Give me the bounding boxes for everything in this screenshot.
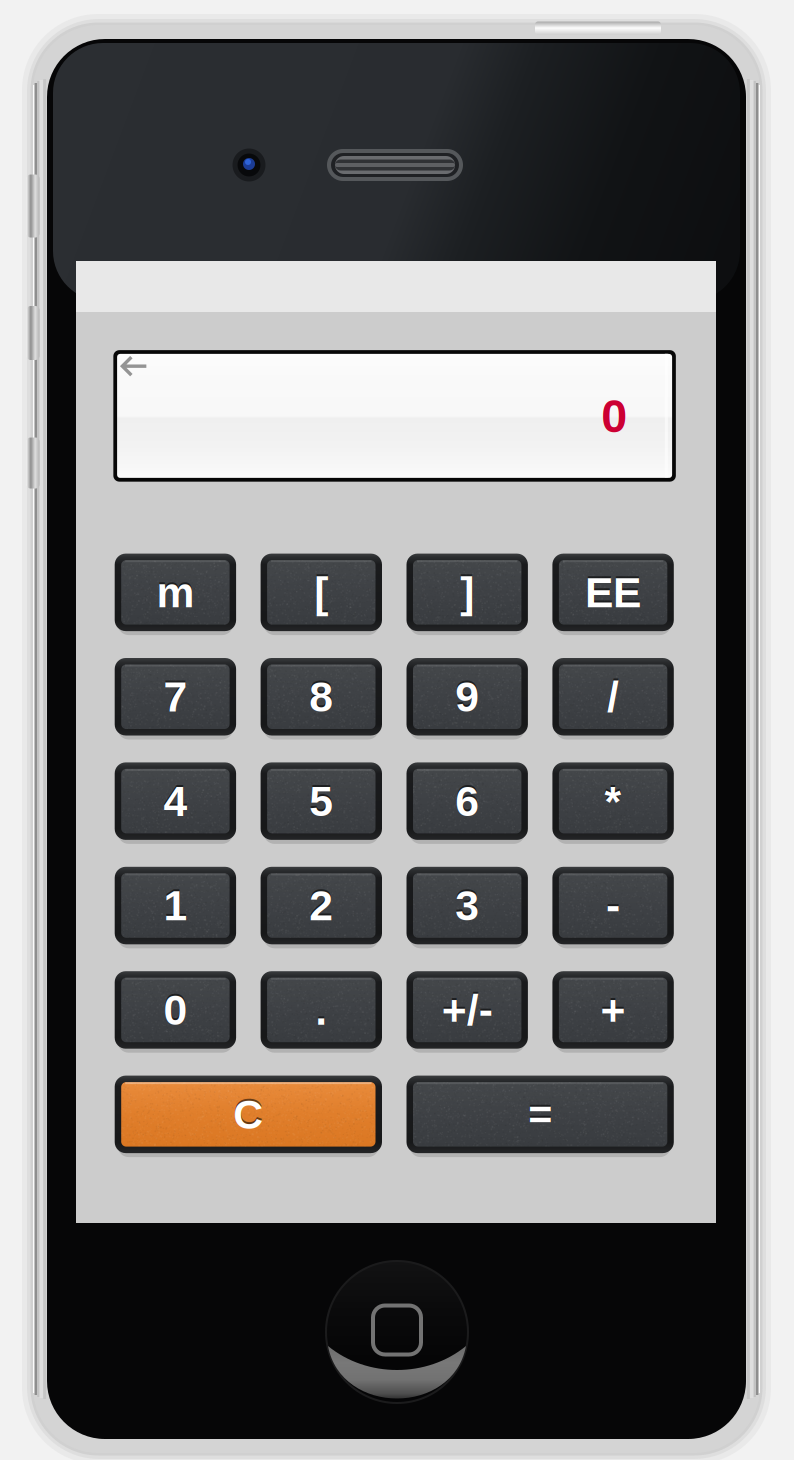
staticText: [ xyxy=(314,568,328,616)
button[interactable]: ] xyxy=(406,554,528,631)
staticText: 9 xyxy=(455,671,479,719)
staticText: EE xyxy=(585,568,641,616)
staticText: m xyxy=(156,568,194,616)
button[interactable]: 0 xyxy=(115,971,236,1049)
staticText: 0 xyxy=(163,986,187,1034)
button[interactable]: C xyxy=(115,1076,382,1153)
staticText: 0 xyxy=(163,984,187,1032)
button[interactable]: EE xyxy=(552,554,674,631)
staticText: 7 xyxy=(163,673,187,721)
staticText: ] xyxy=(460,566,474,614)
staticText: m xyxy=(156,566,194,614)
button[interactable]: 5 xyxy=(261,762,382,840)
button[interactable]: = xyxy=(406,1076,674,1153)
button[interactable]: + xyxy=(552,971,674,1049)
staticText: - xyxy=(606,882,620,929)
staticText: 1 xyxy=(163,882,187,929)
button[interactable]: 3 xyxy=(406,867,528,944)
staticText: = xyxy=(528,1091,552,1137)
button[interactable]: 6 xyxy=(406,762,528,840)
button[interactable]: 9 xyxy=(406,658,528,735)
staticText: 6 xyxy=(455,777,479,825)
staticText: . xyxy=(315,986,327,1034)
staticText: 2 xyxy=(309,880,333,927)
staticText: 5 xyxy=(309,775,333,823)
staticText: 9 xyxy=(455,673,479,721)
staticText: +/- xyxy=(442,984,493,1032)
button[interactable]: 8 xyxy=(261,658,382,735)
button[interactable]: +/- xyxy=(406,971,528,1049)
button[interactable]: 2 xyxy=(261,867,382,944)
staticText: 5 xyxy=(309,777,333,825)
staticText: 7 xyxy=(163,671,187,719)
staticText: / xyxy=(607,673,619,721)
staticText: 2 xyxy=(309,882,333,929)
staticText: C xyxy=(233,1089,263,1135)
staticText: . xyxy=(315,984,327,1032)
staticText: 1 xyxy=(163,880,187,927)
staticText: EE xyxy=(585,566,641,614)
staticText: + xyxy=(601,984,626,1032)
button[interactable]: 1 xyxy=(115,867,236,944)
button[interactable]: 7 xyxy=(115,658,236,735)
staticText: - xyxy=(606,880,620,927)
button[interactable]: . xyxy=(261,971,382,1049)
button[interactable]: 4 xyxy=(115,762,236,840)
staticText: * xyxy=(605,775,622,823)
button[interactable]: * xyxy=(552,762,674,840)
staticText: 8 xyxy=(309,671,333,719)
staticText: C xyxy=(233,1091,263,1137)
button[interactable]: - xyxy=(552,867,674,944)
staticText: 4 xyxy=(163,777,187,825)
staticText: 0 xyxy=(601,390,627,442)
staticText: 8 xyxy=(309,673,333,721)
staticText: 3 xyxy=(455,882,479,929)
staticText: 6 xyxy=(455,775,479,823)
staticText: + xyxy=(601,986,626,1034)
button[interactable]: / xyxy=(552,658,674,735)
staticText: ] xyxy=(460,568,474,616)
staticText: * xyxy=(605,777,622,825)
button[interactable]: [ xyxy=(261,554,382,631)
button[interactable]: m xyxy=(115,554,236,631)
staticText: [ xyxy=(314,566,328,614)
staticText: 4 xyxy=(163,775,187,823)
staticText: +/- xyxy=(442,986,493,1034)
staticText: 3 xyxy=(455,880,479,927)
staticText: = xyxy=(528,1089,552,1135)
staticText: / xyxy=(607,671,619,719)
